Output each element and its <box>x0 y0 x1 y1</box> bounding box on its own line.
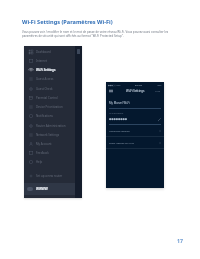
button[interactable]: My Account <box>24 139 82 148</box>
staticText: Dashboard <box>36 50 51 54</box>
button[interactable]: WWWW <box>24 183 82 195</box>
staticText: Network Settings <box>36 133 60 137</box>
staticText: Wi-Fi Settings <box>36 68 56 72</box>
staticText: Feedback <box>36 151 49 155</box>
staticText: Set up a new router <box>36 174 63 178</box>
staticText: My Marvel Wi-Fi <box>109 101 130 105</box>
button[interactable]: Router Administration <box>24 121 82 130</box>
staticText: Notifications <box>36 114 53 118</box>
button[interactable]: Advanced Settings <box>106 125 164 136</box>
staticText: Device Prioritization <box>36 105 63 109</box>
button[interactable]: Guest Access <box>24 74 82 83</box>
staticText: Wi-Fi Settings (Paramètres Wi-Fi) <box>22 18 113 26</box>
staticText: Help <box>36 160 43 164</box>
staticText: 17 <box>177 237 183 244</box>
staticText: Guest Access <box>36 77 54 81</box>
staticText: 100% <box>157 84 162 86</box>
button[interactable]: Set up a new router <box>24 171 82 180</box>
button[interactable]: Internet <box>24 56 82 65</box>
staticText: Wi-Fi Settings <box>126 89 145 93</box>
staticText: My Account <box>36 142 52 146</box>
button[interactable]: Guest Check <box>24 84 82 93</box>
staticText: WWWW <box>36 187 48 191</box>
staticText: Wi-Fi password <box>109 112 124 115</box>
staticText: ●●●○○ AT&T <box>108 84 121 86</box>
button[interactable]: Notifications <box>24 111 82 120</box>
button[interactable]: Edit password <box>158 118 161 121</box>
button[interactable]: Network Settings <box>24 130 82 139</box>
staticText: Other devices on Wi-Fi <box>109 141 135 144</box>
staticText: Guest Check <box>36 87 53 91</box>
staticText: Router Administration <box>36 124 66 128</box>
staticText: ●●●●●●●● <box>109 118 128 121</box>
button[interactable]: Dashboard <box>24 47 82 56</box>
button[interactable]: Menu <box>109 89 113 93</box>
button[interactable]: Parental Control <box>24 93 82 102</box>
button[interactable]: Device Prioritization <box>24 102 82 111</box>
button[interactable]: Wi-Fi Settings <box>24 65 82 74</box>
button[interactable]: Help <box>24 157 82 166</box>
button[interactable]: Other devices on Wi-Fi <box>106 137 164 148</box>
staticText: 9:41 AM <box>135 84 142 86</box>
staticText: Advanced Settings <box>109 129 130 132</box>
staticText: Internet <box>36 59 47 63</box>
staticText: Save <box>155 89 161 92</box>
staticText: Vous pouvez voir / modifier le nom et le… <box>22 30 174 38</box>
staticText: Parental Control <box>36 96 58 100</box>
button[interactable]: Feedback <box>24 148 82 157</box>
